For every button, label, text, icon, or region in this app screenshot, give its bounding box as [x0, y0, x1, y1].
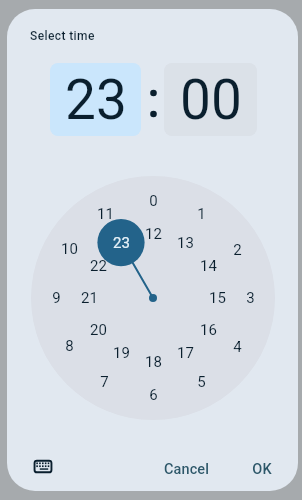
staticText: 12	[145, 225, 162, 243]
staticText: 21	[81, 289, 98, 307]
button[interactable]: 23	[50, 63, 141, 136]
staticText: 10	[61, 240, 78, 258]
staticText: 20	[90, 321, 107, 339]
staticText: 9	[52, 289, 61, 307]
button[interactable]: OK	[241, 451, 283, 487]
button[interactable]: Cancel	[152, 451, 220, 487]
staticText: 4	[233, 338, 242, 356]
staticText: 5	[197, 373, 206, 391]
button[interactable]: Switch to text input mode	[23, 446, 63, 486]
staticText: 1	[197, 205, 206, 223]
staticText: 14	[200, 257, 217, 275]
staticText: 2	[233, 241, 242, 259]
staticText: 8	[65, 337, 74, 355]
staticText: 11	[97, 205, 114, 223]
staticText: OK	[252, 461, 272, 478]
staticText: 19	[113, 344, 130, 362]
staticText: 15	[209, 289, 226, 307]
button[interactable]: 0	[31, 176, 275, 420]
staticText: 6	[149, 386, 158, 404]
staticText: 23	[113, 234, 130, 252]
staticText: 0	[149, 192, 158, 210]
staticText: 3	[246, 289, 255, 307]
staticText: 00	[180, 68, 242, 132]
staticText: 22	[90, 257, 107, 275]
staticText: Select time	[30, 29, 95, 43]
staticText: 13	[177, 234, 194, 252]
staticText: 18	[145, 353, 162, 371]
button[interactable]: 00	[164, 63, 257, 136]
staticText: 17	[177, 344, 194, 362]
staticText: 7	[100, 373, 109, 391]
staticText: 16	[200, 321, 217, 339]
staticText: 23	[65, 68, 127, 132]
staticText: Cancel	[164, 461, 209, 478]
